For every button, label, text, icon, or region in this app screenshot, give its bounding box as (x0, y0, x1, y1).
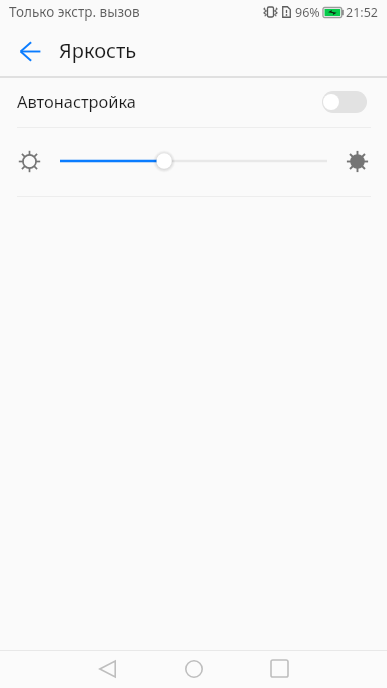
staticText: 96% (295, 4, 320, 21)
button[interactable]: Brightness slider (52, 149, 335, 173)
button[interactable]: Automatic brightness toggle (322, 91, 367, 113)
staticText: Автонастройка (17, 90, 136, 112)
button[interactable]: Автонастройка (0, 76, 387, 127)
button[interactable]: Back (84, 654, 130, 683)
button[interactable]: Back (14, 35, 47, 68)
staticText: Яркость (59, 37, 137, 64)
button[interactable]: Back (0, 24, 387, 76)
staticText: Только экстр. вызов (9, 3, 140, 21)
staticText: 21:52 (346, 4, 378, 21)
button[interactable]: Home (170, 654, 217, 683)
button[interactable]: Recent apps (256, 654, 303, 683)
